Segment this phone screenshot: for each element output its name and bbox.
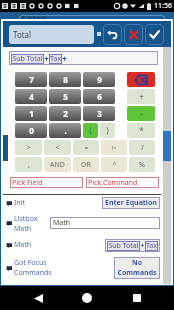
staticText: Sub Total [108,241,139,251]
button[interactable]: Pick Field [10,177,83,188]
staticText: 11:56 [154,1,172,11]
button[interactable]: Pick Command [86,177,159,188]
staticText: Enter Equation [105,198,157,208]
button[interactable]: Math [6,238,160,252]
staticText: > [26,143,31,153]
staticText: * [139,125,144,136]
button[interactable]: Back [26,286,50,310]
staticText: 4 [29,91,34,102]
staticText: / [141,143,144,153]
button[interactable]: Undo [103,24,122,45]
staticText: < [55,143,60,153]
button[interactable]: % [129,157,155,172]
button[interactable]: Confirm [145,24,164,45]
staticText: Sub Total [12,54,43,64]
button[interactable]: , [15,157,42,172]
button[interactable]: 3 [83,106,115,121]
button[interactable]: - [127,106,155,121]
button[interactable]: = [73,140,99,155]
button[interactable]: 0 [15,123,47,138]
staticText: + [139,91,144,102]
button[interactable]: Backspace [127,72,155,87]
staticText: + [44,53,49,64]
staticText: ^ [112,160,117,170]
staticText: Total [13,29,32,40]
staticText: 1 [29,108,34,119]
button[interactable]: / [129,140,155,155]
staticText: Math [14,240,105,250]
staticText: Sales [21,12,47,26]
button[interactable]: Got Focus Commands [6,256,160,280]
button[interactable]: OR [73,157,99,172]
button[interactable]: Home [75,286,99,310]
staticText: - [140,108,143,119]
button[interactable]: Sub Total [9,51,158,65]
staticText: Math [53,218,71,228]
button[interactable]: Total [9,25,94,44]
button[interactable]: 1 [15,106,47,121]
staticText: 9 [97,74,102,85]
staticText: , [28,160,30,170]
staticText: ( [89,125,92,136]
button[interactable]: 4 [15,89,47,104]
button[interactable]: 7 [15,72,47,87]
staticText: 6 [97,91,102,102]
staticText: OR [81,160,91,170]
staticText: + [140,241,145,251]
staticText: ) [106,125,109,136]
staticText: Init [14,198,102,208]
staticText: Pick Command [88,178,138,188]
staticText: Tax [50,54,61,64]
staticText: 5 [63,91,68,102]
button[interactable]: * [127,123,155,138]
staticText: . [64,125,67,136]
button[interactable]: . [49,123,81,138]
button[interactable]: 2 [49,106,81,121]
staticText: 8 [63,74,68,85]
button[interactable]: Recent apps [125,286,149,310]
staticText: != [111,144,117,152]
button[interactable]: 5 [49,89,81,104]
staticText: + [62,53,67,64]
button[interactable]: Listbox Math [6,214,160,232]
staticText: = [84,143,89,153]
button[interactable]: != [101,140,127,155]
button[interactable]: + [127,89,155,104]
staticText: No Commands [117,258,157,278]
staticText: 3 [97,108,102,119]
staticText: Got Focus Commands [14,258,114,278]
staticText: Tax [146,241,157,251]
staticText: AND [50,160,65,170]
button[interactable]: 9 [83,72,115,87]
button[interactable]: 8 [49,72,81,87]
button[interactable]: > [15,140,42,155]
staticText: 0 [29,125,34,136]
staticText: Listbox Math [14,214,46,232]
button[interactable]: Init [6,195,160,211]
button[interactable]: Cancel [124,24,143,45]
staticText: 7 [29,74,34,85]
button[interactable]: ( [83,123,98,138]
staticText: Pick Field [12,178,43,188]
staticText: 2 [63,108,68,119]
button[interactable]: < [44,140,71,155]
button[interactable]: 6 [83,89,115,104]
button[interactable]: AND [44,157,71,172]
button[interactable]: ) [100,123,115,138]
staticText: % [139,160,145,170]
button[interactable]: ^ [101,157,127,172]
